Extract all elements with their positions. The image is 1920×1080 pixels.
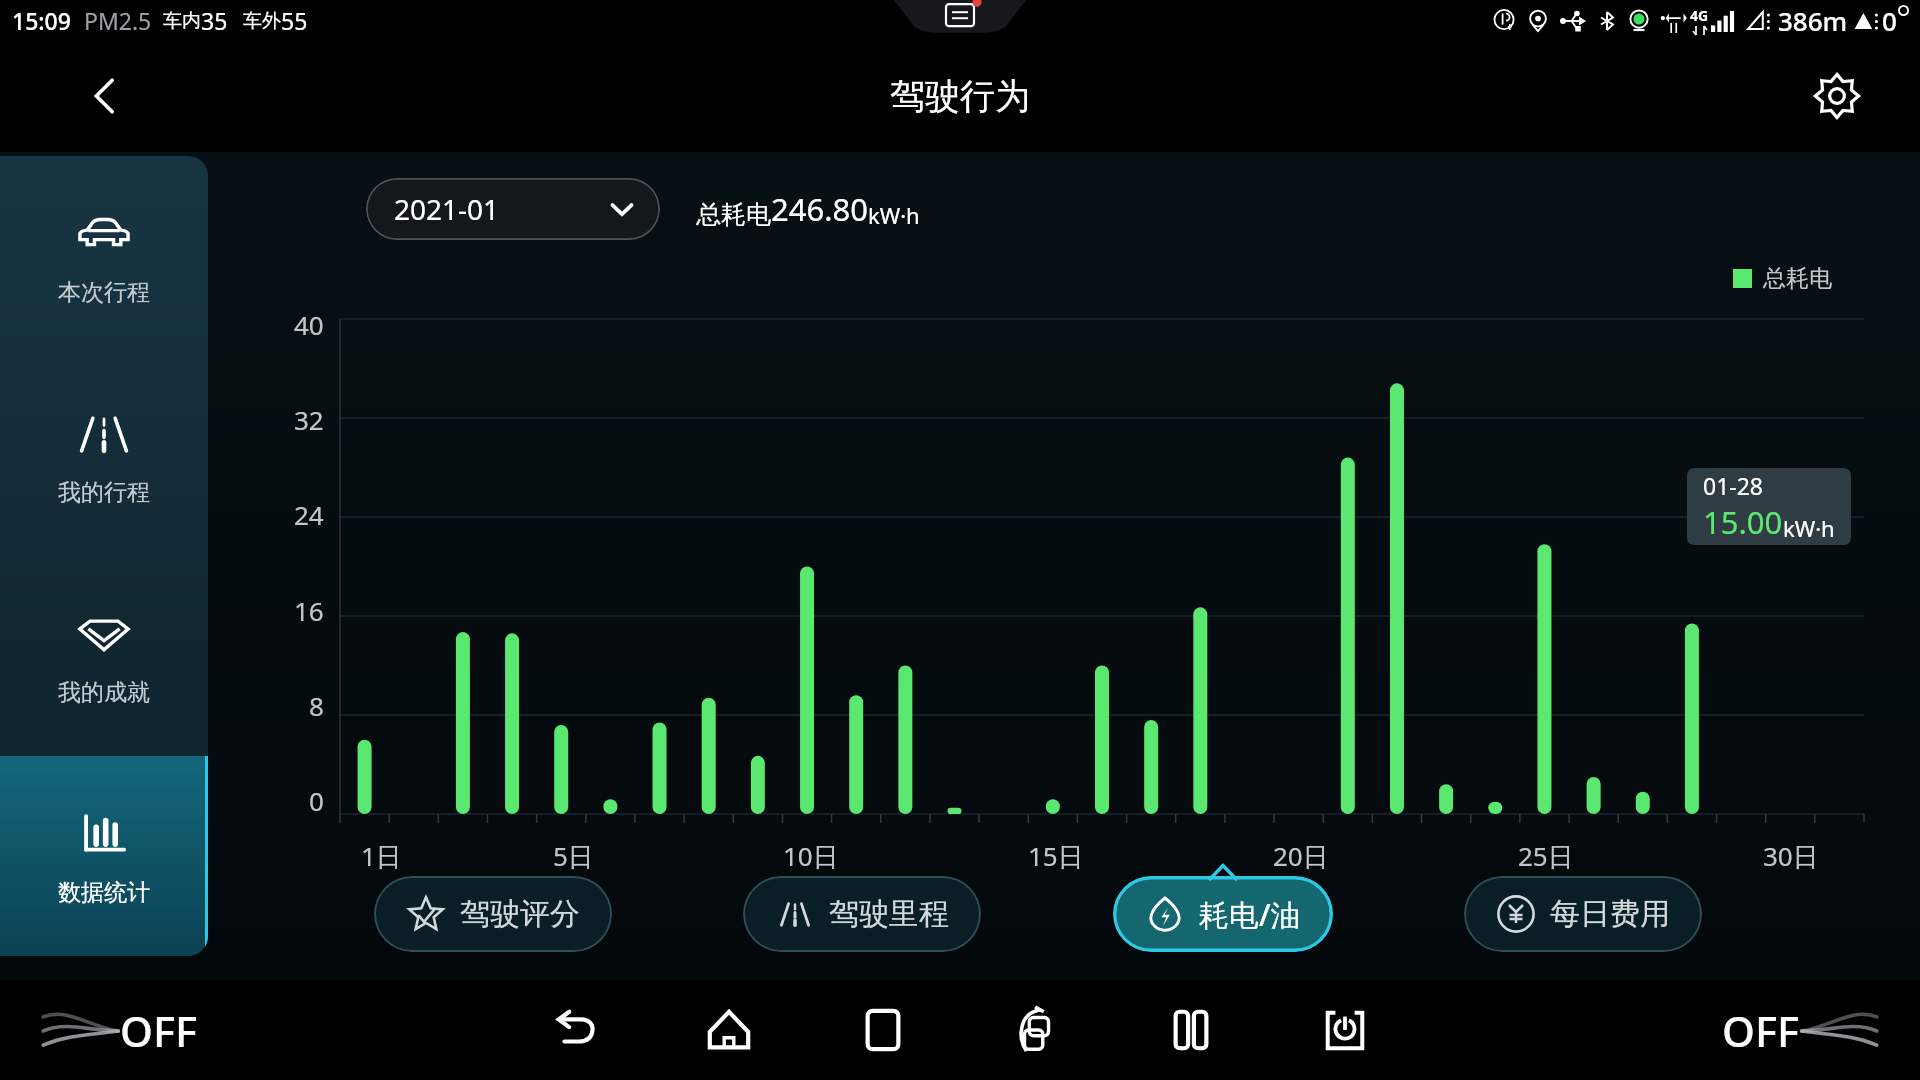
staticText: 驾驶行为 (890, 74, 1030, 118)
staticText: 30日 (1763, 838, 1819, 874)
button[interactable]: 每日费用 (1464, 876, 1702, 952)
staticText: 0 (1882, 3, 1897, 38)
button[interactable]: Recents (844, 991, 922, 1069)
staticText: OFF (120, 1002, 198, 1059)
staticText: 本次行程 (58, 278, 150, 307)
staticText: 24 (294, 497, 324, 532)
button[interactable]: Home (690, 991, 768, 1069)
staticText: kW·h (1783, 513, 1835, 543)
button[interactable]: 驾驶里程 (743, 876, 981, 952)
button[interactable]: Applications (998, 991, 1076, 1069)
staticText: 车内 (163, 9, 201, 33)
button[interactable]: Passenger climate off (1718, 998, 1884, 1063)
staticText: kW·h (868, 200, 920, 230)
staticText: 数据统计 (58, 878, 150, 907)
staticText: 25日 (1518, 838, 1574, 874)
staticText: 10日 (783, 838, 839, 874)
staticText: 15日 (1028, 838, 1084, 874)
staticText: 01-28 (1703, 470, 1764, 501)
staticText: 15:09 (12, 5, 71, 36)
button[interactable]: 2021-01 (366, 178, 660, 240)
staticText: 驾驶评分 (460, 895, 580, 933)
button[interactable]: Power (1306, 991, 1384, 1069)
button[interactable]: Settings (1804, 63, 1870, 129)
button[interactable]: 本次行程 (0, 156, 208, 356)
staticText: 246.80 (771, 188, 868, 230)
button[interactable]: 驾驶评分 (374, 876, 612, 952)
button[interactable]: Split screen (1152, 991, 1230, 1069)
staticText: 32 (294, 402, 324, 437)
button[interactable]: Back (536, 991, 614, 1069)
button[interactable]: 我的行程 (0, 356, 208, 556)
button[interactable]: 耗电/油 (1113, 876, 1333, 952)
staticText: PM2.5 (84, 5, 152, 36)
staticText: 总耗电 (696, 199, 771, 230)
staticText: OFF (1722, 1002, 1800, 1059)
staticText: 15.00 (1703, 501, 1783, 543)
staticText: 每日费用 (1550, 895, 1670, 933)
button[interactable]: 数据统计 (0, 756, 208, 956)
staticText: 我的成就 (58, 678, 150, 707)
staticText: 车外 (243, 9, 281, 33)
button[interactable]: Back (76, 67, 134, 125)
staticText: 驾驶里程 (829, 895, 949, 933)
staticText: 0 (309, 783, 324, 818)
staticText: 4G (1690, 6, 1709, 25)
staticText: 2021-01 (394, 190, 500, 228)
staticText: 35 (201, 5, 228, 36)
staticText: 386m (1778, 3, 1848, 38)
staticText: 40 (294, 307, 324, 342)
staticText: 5日 (553, 838, 594, 874)
staticText: 耗电/油 (1199, 894, 1301, 935)
staticText: 我的行程 (58, 478, 150, 507)
staticText: 8 (309, 688, 324, 723)
staticText: 总耗电 (1763, 264, 1832, 293)
staticText: 20日 (1273, 838, 1329, 874)
staticText: 16 (294, 593, 324, 628)
staticText: 1日 (361, 838, 402, 874)
button[interactable]: Driver climate off (36, 998, 202, 1063)
button[interactable]: 我的成就 (0, 556, 208, 756)
staticText: 55 (281, 5, 308, 36)
